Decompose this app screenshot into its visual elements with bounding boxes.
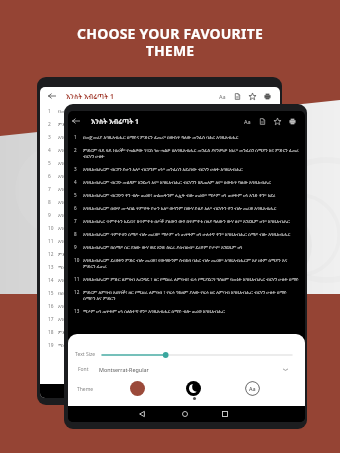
staticText: 19 (48, 342, 58, 349)
staticText: 10 (74, 257, 83, 263)
staticText: 12 (48, 251, 58, 258)
staticText: 11 (74, 276, 83, 282)
staticText: 6 (74, 205, 83, 211)
staticText: 8 (74, 231, 83, 237)
staticText: 4 (48, 147, 58, 154)
staticText: ምድርም ለምባብ አሰገነች፣ ዘር የሚዘራ ለምባብ ፣ የፍሬ ዓስዘም… (83, 289, 299, 301)
staticText: 13 (74, 308, 83, 314)
staticText: እግዚአብሔርም ከሰማይ ሰር ያለው ውሃ ወደ አንድ ስፍራ ይሰብሰብ… (83, 244, 243, 250)
staticText: እግዚአብሔርም ብርሃኑን ቀን (58, 160, 108, 167)
staticText: 15 (48, 290, 58, 297)
staticText: 7 (74, 218, 83, 224)
staticText: ማታም ሆነ ጠዋትም ሆነ ሰለስተኛ ቀን። እግዚአብሔር ሰማይ ብሎ … (83, 308, 225, 314)
button[interactable]: Light theme (245, 381, 260, 396)
button[interactable]: Sepia theme (130, 381, 145, 396)
staticText: እግዚአብሔርም ብርሃን ይሁን (58, 134, 109, 141)
button[interactable]: Back (46, 90, 58, 102)
staticText: ማታም ሆነ ጠዋትም ሆነ (58, 342, 100, 349)
staticText: እግዚአብሔርም ብርሃን ይሁን አለ። ብርሃንም ሆነ። መንፈሰን አደ… (83, 166, 243, 172)
staticText: Font (78, 366, 89, 373)
staticText: እግዚአብሔርም ጥምቀቱን ሰማይ (58, 199, 116, 206)
staticText: 8 (48, 199, 58, 206)
staticText: 3 (74, 166, 83, 172)
staticText: Theme (77, 386, 94, 393)
button[interactable]: Home (178, 407, 192, 421)
button[interactable]: Font (68, 362, 305, 376)
staticText: 6 (48, 173, 58, 180)
staticText: እግዚአብሔርም ጥምቀቱን ሰማይ ብሎ ጠረወ። ማታም ሆነ ጠዋትም ሆ… (83, 231, 291, 237)
staticText: 10 (48, 225, 58, 232)
staticText: እግዚአብሔርም ምድር ለምባብ (58, 238, 113, 245)
staticText: Aa (219, 93, 226, 100)
staticText: እግዚአብሔርም ሰማይ በለው (58, 277, 109, 284)
staticText: Montserrat-Regular (99, 366, 149, 373)
staticText: 5 (48, 160, 58, 167)
button[interactable]: Text size (217, 91, 228, 102)
staticText: እግዚአብሔርም ደረቂትን ምድር ብሎ ጠረወ፣ የውሃውንም ስብስባ ባ… (83, 257, 299, 269)
staticText: እግዚአብሔርም ከሰማይ ሰር (58, 212, 107, 219)
staticText: እንስት እብሬጣት 1 (91, 117, 139, 126)
staticText: 9 (74, 244, 83, 250)
button[interactable]: Notes (232, 91, 243, 102)
staticText: 11 (48, 238, 58, 245)
staticText: 13 (48, 264, 58, 271)
staticText: 14 (48, 277, 58, 284)
button[interactable]: Text Size (68, 347, 305, 362)
staticText: ምድርም ባዶ ባዶ ነበረች። የጣልቃ (58, 121, 117, 128)
staticText: 1 (74, 134, 83, 140)
staticText: CHOOSE YOUR FAVOURITE THEME (0, 24, 340, 60)
staticText: ማታም ሆነ ጠዋትም ሆነ (58, 264, 100, 271)
staticText: እግዚአብሔርም በውሃ መሓከል ጥምቀት ይሁን አለ። ውሃንም ከውሃ … (83, 205, 277, 211)
staticText: ምድርም ባዶ ባዶ ነበረች። የጣልቃው ፕርስ ገጽ ጣልቃ በእግዚአብ… (83, 147, 299, 159)
staticText: 7 (48, 186, 58, 193)
staticText: እንስት እብሬጣት 1 (66, 92, 114, 101)
staticText: Text Size (75, 351, 96, 358)
button[interactable]: Dark theme (186, 381, 201, 396)
staticText: 2 (48, 121, 58, 128)
staticText: 17 (48, 316, 58, 323)
staticText: 3 (48, 134, 58, 141)
staticText: 2 (74, 147, 83, 153)
staticText: እግዚአብሔርም ሁለት ታላልቅ (58, 303, 111, 310)
button[interactable]: Print (262, 91, 273, 102)
staticText: 1 (48, 108, 58, 115)
staticText: እግዚአብሔር ጥምቀቱን አደረገ፣ ከጥምቀቱ በታች ያለውን ውሃ ከጥ… (83, 218, 290, 224)
button[interactable]: Recent apps (218, 407, 232, 421)
button[interactable]: Bookmark (272, 116, 283, 127)
staticText: በመጀመሪያ እግዚአብሔር ሰማይና (58, 108, 117, 115)
button[interactable]: Text size (242, 116, 253, 127)
staticText: 9 (48, 212, 58, 219)
staticText: እግዚአብሔርም ደረቂትን (58, 225, 101, 232)
button[interactable]: Print (287, 116, 298, 127)
staticText: በሰማይ ላይ ያለውን ብርሃን (58, 290, 105, 297)
staticText: Aa (244, 118, 251, 125)
staticText: እግዚአብሔር ጥምቀቱን አደረገ (58, 186, 111, 193)
staticText: እግዚአብሔርም በውሃ መሓከል (58, 173, 112, 180)
button[interactable]: Back (70, 115, 82, 127)
button[interactable]: Back (135, 407, 149, 421)
staticText: እግዚአብሔርም ብርሃኑ መልካም (58, 147, 114, 154)
staticText: እግዚአብሔርም ብርሃኑን ቀን ብሎ ጠረወ፣ ጽልመትንም ሌሊት ብሎ … (83, 192, 276, 198)
staticText: 16 (48, 303, 58, 310)
staticText: Aa (249, 385, 256, 392)
staticText: በመጀመሪያ እግዚአብሔር ሰማይና ምድርን ፈጠረ። በውስጥ ካለው መ… (83, 134, 239, 140)
button[interactable]: Bookmark (247, 91, 258, 102)
button[interactable]: Notes (257, 116, 268, 127)
staticText: 5 (74, 192, 83, 198)
staticText: እግዚአብሔርም ምድር ለምባብ አረንጓዴ ፣ ዘር የሚዘራ ለምባብ፣ … (83, 276, 299, 282)
staticText: 4 (74, 179, 83, 185)
staticText: እግዚአብሔርም ብርሃኑ መልካም እንደሆነ አየ። እግዚአብሔር ብርሃ… (83, 179, 272, 185)
staticText: 18 (48, 329, 58, 336)
staticText: ምድርንም ይገዛ ዝንባሌን (58, 329, 101, 336)
staticText: እግዚአብሔርም በሰማይ ጥምቀት (58, 316, 116, 323)
staticText: 12 (74, 289, 83, 295)
staticText: ምድርም ለምባብ አሰገነች፣ (58, 251, 105, 258)
